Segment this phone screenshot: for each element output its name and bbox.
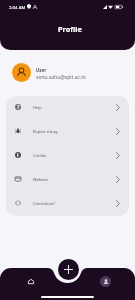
button[interactable]: ? <box>6 96 129 120</box>
button[interactable]: Home <box>23 273 39 289</box>
staticText: 2:34 AM <box>9 4 26 10</box>
staticText: Contribute? <box>33 201 55 206</box>
staticText: i <box>17 152 19 158</box>
button[interactable]: Report a bug <box>6 120 129 144</box>
button[interactable]: Profile <box>97 273 113 289</box>
button[interactable]: Add <box>58 259 79 280</box>
staticText: Credits <box>33 153 47 158</box>
staticText: ? <box>17 104 20 110</box>
staticText: Profile <box>58 24 82 34</box>
button[interactable]: Website <box>6 168 129 192</box>
staticText: Help <box>33 105 42 110</box>
staticText: User <box>36 67 47 73</box>
staticText: Website <box>33 177 49 182</box>
button[interactable]: i <box>6 144 129 168</box>
button[interactable]: User <box>0 62 135 82</box>
staticText: Report a bug <box>33 129 58 134</box>
button[interactable]: Contribute? <box>6 192 129 216</box>
staticText: sonu.sahu@spit.ac.in <box>36 74 86 81</box>
